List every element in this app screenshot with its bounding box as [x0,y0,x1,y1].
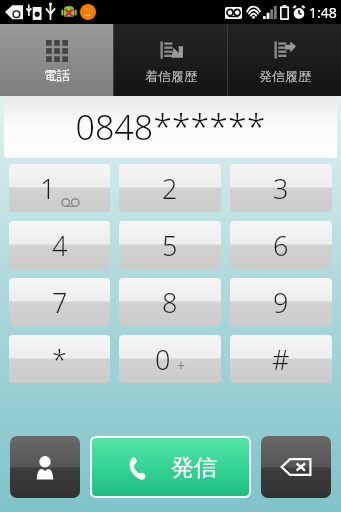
staticText: * [52,341,67,378]
staticText: 3 [273,170,289,207]
staticText: 2 [162,170,178,207]
staticText: # [272,341,290,378]
staticText: 7 [52,284,68,321]
staticText: 1:48 [309,3,337,22]
button[interactable]: 1 [9,164,110,212]
button[interactable]: 6 [230,221,332,269]
button[interactable]: # [230,335,332,383]
staticText: + [177,356,186,375]
button[interactable]: 0 [119,335,221,383]
staticText: 発信履歴 [259,68,311,84]
button[interactable]: 4 [9,221,110,269]
button[interactable]: 3 [230,164,332,212]
button[interactable]: 7 [9,278,110,326]
button[interactable]: Contacts [10,436,80,498]
button[interactable]: 0848****** [4,96,337,158]
staticText: 1 [40,170,56,207]
staticText: 発信 [171,453,217,482]
staticText: 9 [273,284,289,321]
staticText: 8 [162,284,178,321]
button[interactable]: 8 [119,278,221,326]
button[interactable]: 電話 [0,24,113,96]
button[interactable]: 発信 [92,438,249,496]
staticText: 着信履歴 [145,68,197,84]
button[interactable]: 着信履歴 [114,24,227,96]
button[interactable]: Backspace [261,436,331,498]
staticText: 電話 [44,67,70,83]
button[interactable]: 9 [230,278,332,326]
staticText: 0 [155,341,171,378]
staticText: 5 [162,227,178,264]
staticText: 4 [52,227,68,264]
button[interactable]: * [9,335,110,383]
button[interactable]: 2 [119,164,221,212]
button[interactable]: 発信履歴 [228,24,341,96]
staticText: 0848****** [75,104,266,150]
button[interactable]: 5 [119,221,221,269]
staticText: 6 [273,227,289,264]
